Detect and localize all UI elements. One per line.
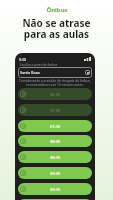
staticText: 09:00 xyxy=(50,171,61,176)
button[interactable]: 08:00 xyxy=(18,135,92,147)
staticText: 09:30 xyxy=(50,187,61,192)
button[interactable]: 06:30 xyxy=(18,88,92,100)
button[interactable]: 07:30 xyxy=(18,120,92,132)
staticText: 08:30 xyxy=(50,155,61,160)
other: Calendar xyxy=(85,70,90,75)
staticText: Ônibus xyxy=(46,6,68,14)
staticText: 06:30 xyxy=(50,92,61,97)
button[interactable]: Santa Rosa xyxy=(18,67,92,78)
staticText: Considerando a previsão de chegada do ôn… xyxy=(18,79,92,87)
staticText: 07:00 xyxy=(50,108,61,113)
button[interactable]: 08:30 xyxy=(18,151,92,163)
staticText: Escolha o ponto de ônibus xyxy=(20,63,58,67)
button[interactable]: 10:00 xyxy=(18,199,92,200)
staticText: 07:30 xyxy=(50,124,61,129)
staticText: Santa Rosa xyxy=(20,70,40,75)
staticText: 08:00 xyxy=(50,139,61,144)
staticText: Não se atrase para as aulas xyxy=(22,16,91,41)
button[interactable]: 07:00 xyxy=(18,104,92,116)
staticText: 9:30 xyxy=(19,57,26,62)
button[interactable]: 09:00 xyxy=(18,167,92,179)
button[interactable]: 09:30 xyxy=(18,183,92,195)
